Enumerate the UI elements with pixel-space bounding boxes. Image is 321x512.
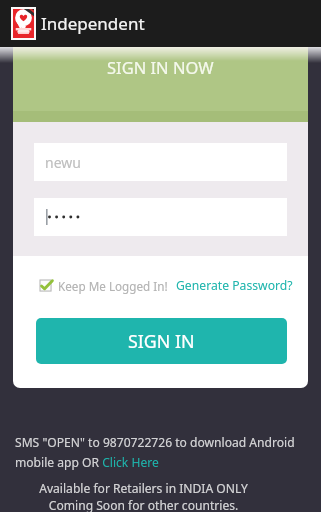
- staticText: Independent: [41, 12, 145, 35]
- staticText: SIGN IN: [128, 329, 195, 353]
- staticText: Keep Me Logged In!: [58, 278, 168, 294]
- staticText: newu: [45, 153, 81, 172]
- button[interactable]: SIGN IN: [36, 318, 287, 364]
- staticText: Available for Retailers in INDIA ONLY Co…: [0, 480, 291, 512]
- button[interactable]: newu: [34, 143, 287, 181]
- button[interactable]: Keep Me Logged In!: [40, 278, 168, 294]
- button[interactable]: [34, 198, 287, 236]
- button[interactable]: SMS "OPEN" to 9870722726 to download And…: [15, 434, 310, 470]
- staticText: SIGN IN NOW: [107, 56, 214, 78]
- other: aaram shop logo: [13, 9, 34, 38]
- button[interactable]: Generate Password?: [176, 277, 293, 294]
